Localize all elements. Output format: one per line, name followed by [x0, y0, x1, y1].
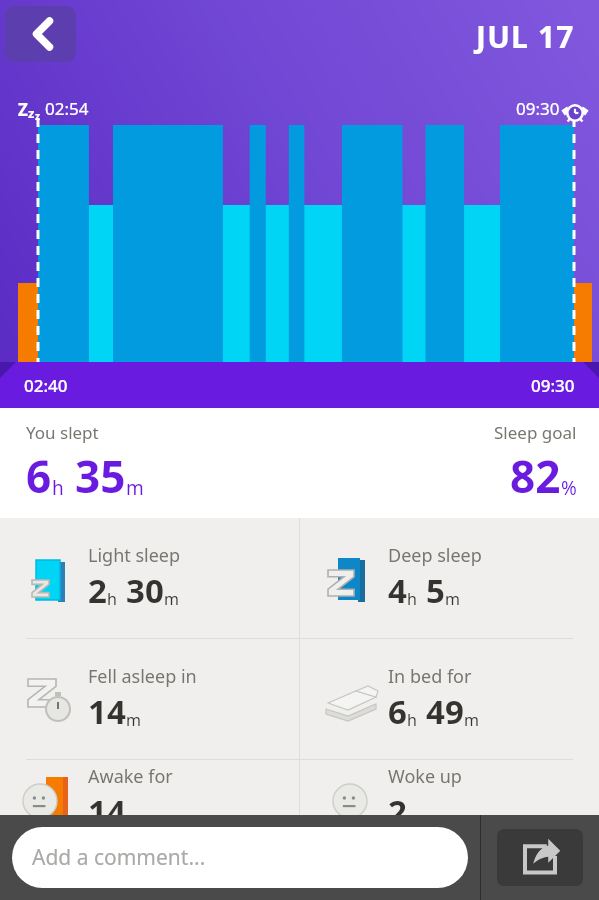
staticText: Deep sleep — [388, 543, 482, 568]
staticText: h — [52, 475, 64, 501]
staticText: 30 — [126, 568, 164, 613]
button[interactable]: You slept — [0, 408, 599, 518]
staticText: Fell asleep in — [88, 664, 197, 689]
staticText: h — [407, 588, 417, 610]
staticText: z — [35, 109, 40, 123]
staticText: h — [107, 588, 117, 610]
staticText: In bed for — [388, 664, 472, 689]
staticText: You slept — [26, 421, 99, 444]
staticText: 14 — [88, 789, 126, 834]
button[interactable]: Share — [497, 829, 583, 886]
staticText: m — [126, 709, 141, 731]
button[interactable]: Light sleep — [0, 518, 299, 638]
staticText: Light sleep — [88, 543, 181, 568]
staticText: 02:40 — [24, 374, 68, 397]
staticText: JUL 17 — [476, 16, 575, 57]
staticText: m — [164, 588, 179, 610]
staticText: 09:30 — [531, 374, 575, 397]
staticText: 6 — [388, 689, 407, 734]
staticText: % — [561, 475, 577, 501]
button[interactable]: Woke up — [300, 760, 599, 838]
staticText: Add a comment... — [32, 843, 206, 872]
staticText: 2 — [388, 789, 407, 834]
staticText: 35 — [75, 446, 126, 506]
staticText: 2 — [88, 568, 107, 613]
staticText: Sleep goal — [494, 421, 577, 444]
staticText: Woke up — [388, 764, 462, 789]
staticText: m — [464, 709, 479, 731]
staticText: m — [126, 475, 144, 501]
staticText: 02:54 — [45, 97, 89, 120]
staticText: 6 — [26, 446, 52, 506]
button[interactable]: Deep sleep — [300, 518, 599, 638]
staticText: 82 — [510, 446, 561, 506]
button[interactable]: Back — [5, 6, 76, 62]
button[interactable]: Fell asleep in — [0, 639, 299, 759]
button[interactable]: In bed for — [300, 639, 599, 759]
staticText: 49 — [426, 689, 464, 734]
button[interactable]: Awake for — [0, 760, 299, 838]
staticText: 09:30 — [516, 97, 560, 120]
staticText: m — [126, 809, 141, 831]
staticText: 5 — [426, 568, 445, 613]
button[interactable]: Add a comment... — [12, 827, 468, 888]
staticText: Z — [18, 98, 28, 121]
staticText: m — [445, 588, 460, 610]
staticText: 4 — [388, 568, 407, 613]
staticText: Awake for — [88, 764, 173, 789]
staticText: h — [407, 709, 417, 731]
staticText: 14 — [88, 689, 126, 734]
staticText: z — [28, 104, 35, 122]
